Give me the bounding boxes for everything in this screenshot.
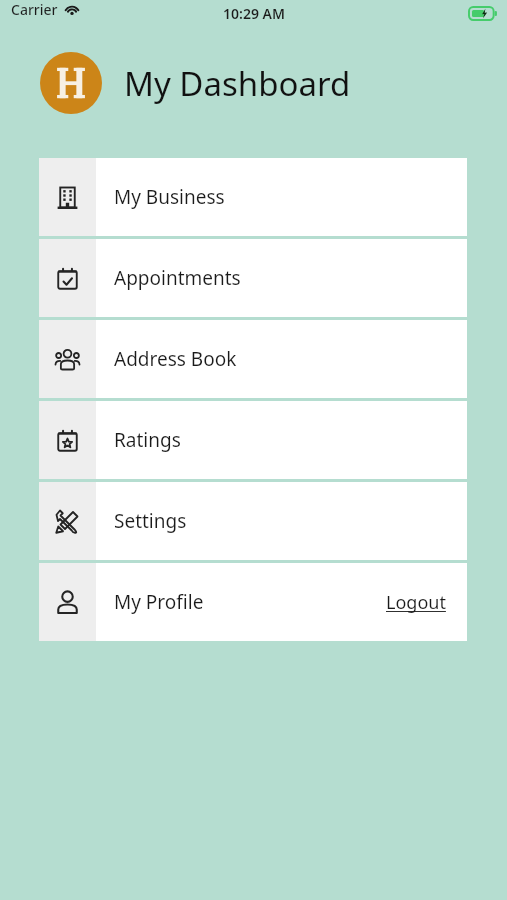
staticText: 10:29 AM — [223, 4, 285, 23]
button[interactable]: Ratings — [39, 401, 467, 479]
staticText: Settings — [114, 508, 187, 534]
staticText: Logout — [386, 590, 446, 615]
button[interactable]: Settings — [39, 482, 467, 560]
staticText: My Profile — [114, 589, 204, 615]
button[interactable]: Address Book — [39, 320, 467, 398]
button[interactable]: My Profile — [39, 563, 467, 641]
staticText: Carrier — [11, 0, 58, 19]
button[interactable]: Logout — [384, 588, 448, 617]
staticText: Address Book — [114, 346, 237, 372]
staticText: My Dashboard — [124, 61, 351, 106]
button[interactable]: My Business — [39, 158, 467, 236]
staticText: My Business — [114, 184, 225, 210]
staticText: Appointments — [114, 265, 241, 291]
button[interactable]: Appointments — [39, 239, 467, 317]
staticText: Ratings — [114, 427, 181, 453]
